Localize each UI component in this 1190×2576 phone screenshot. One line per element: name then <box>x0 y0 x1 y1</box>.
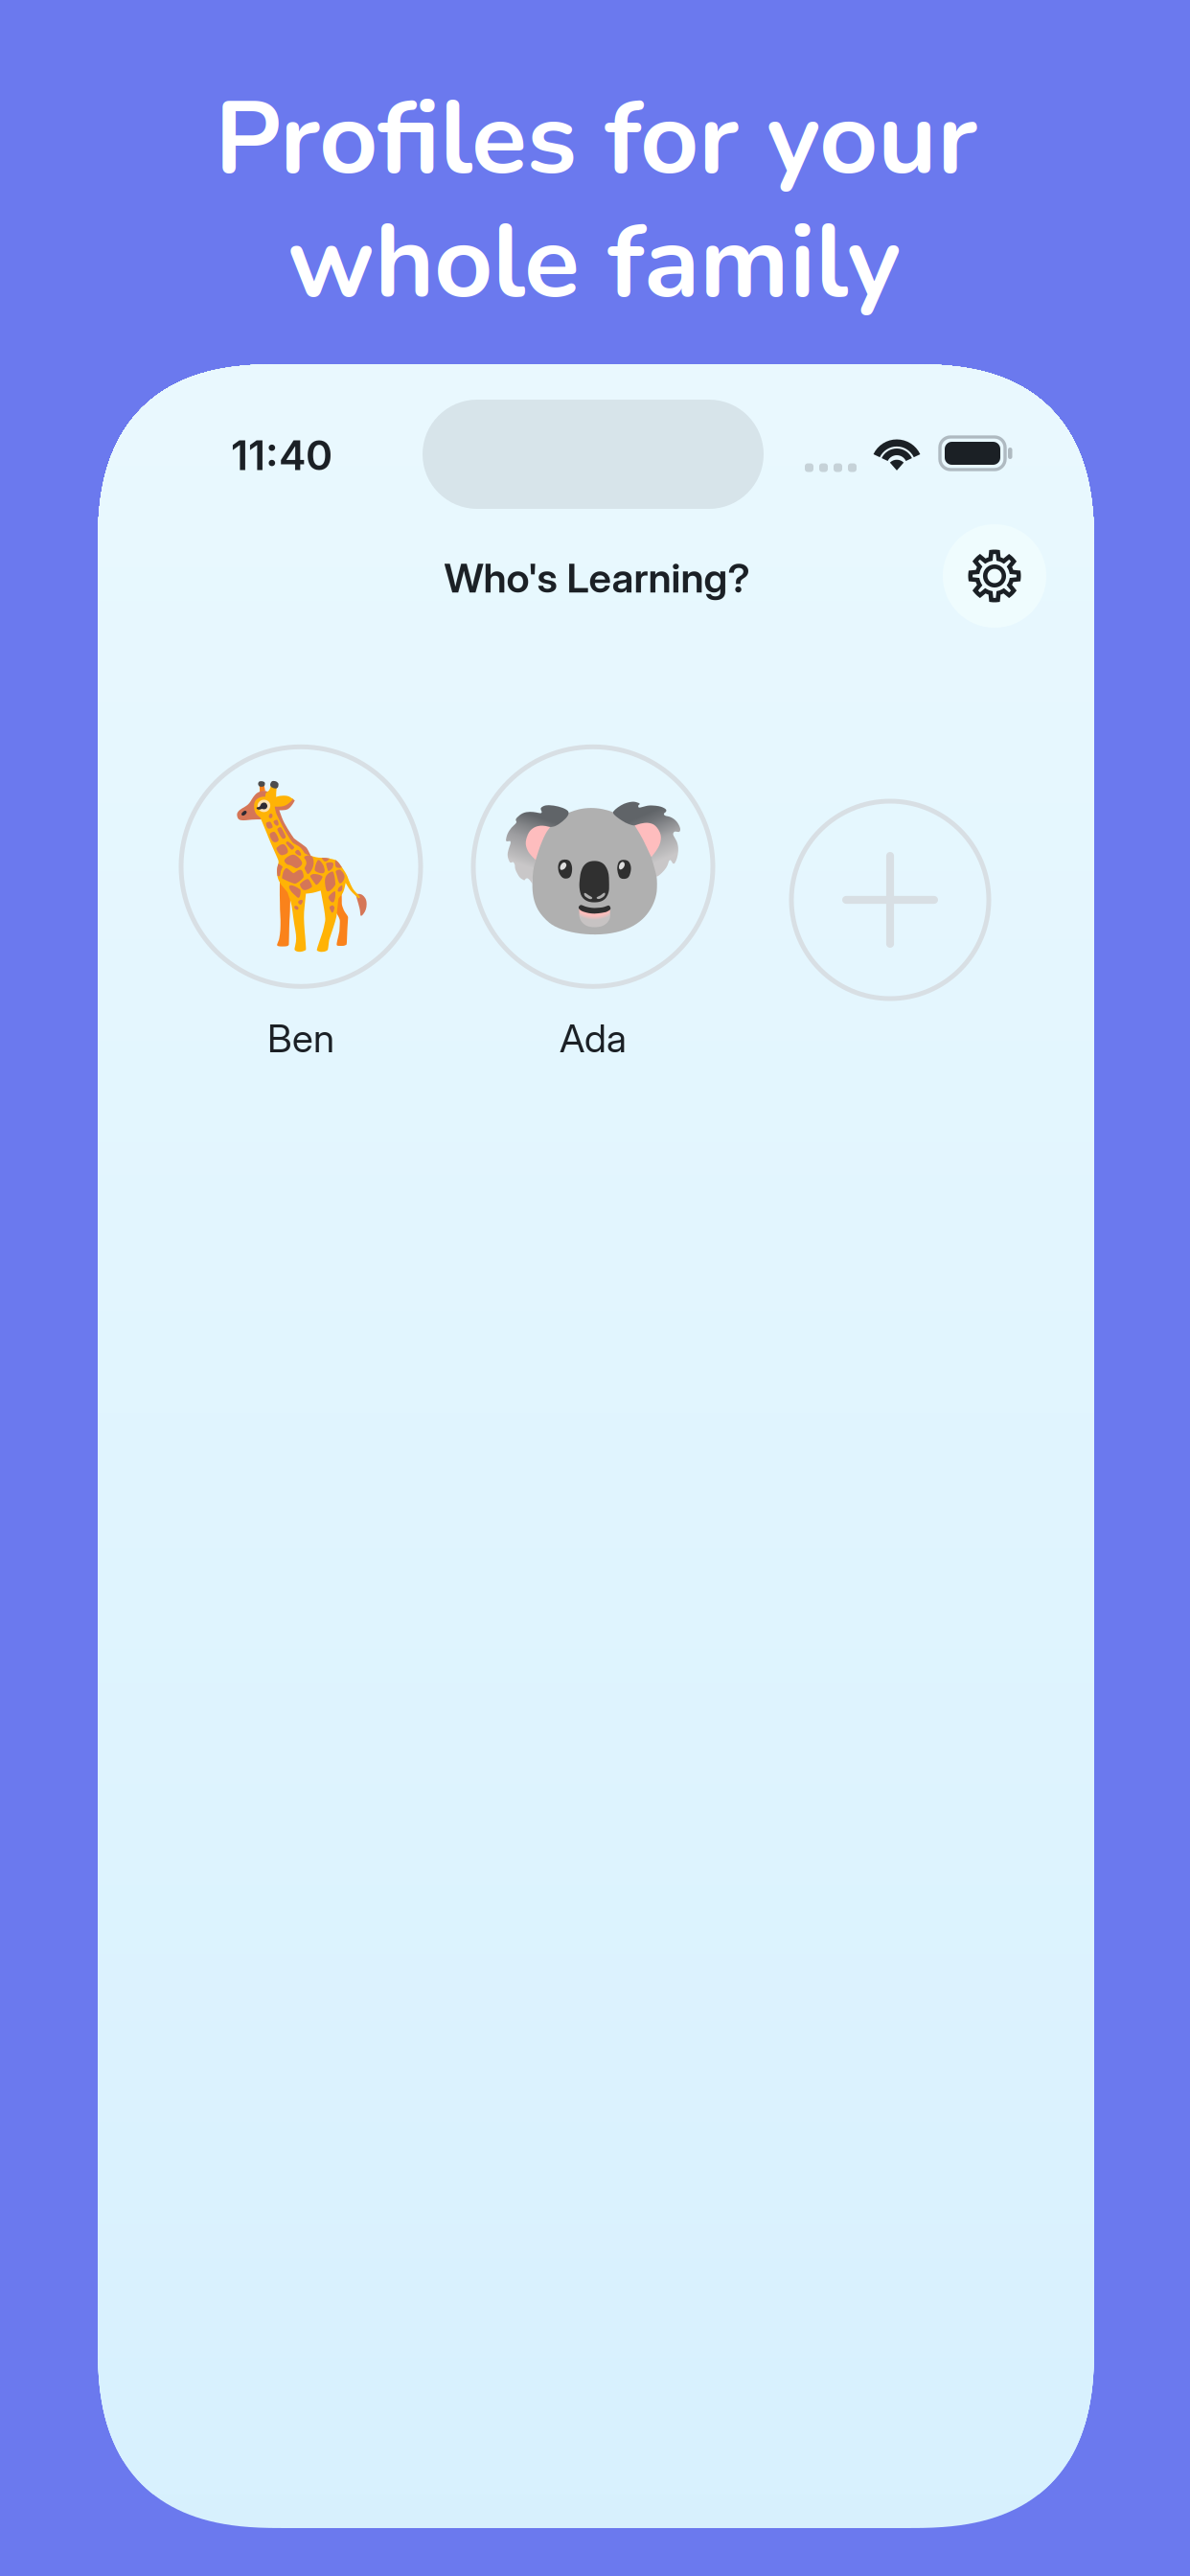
button[interactable]: 🦒 <box>167 744 435 1062</box>
button[interactable]: Settings <box>943 524 1046 628</box>
staticText: Profiles for your <box>215 69 977 209</box>
staticText: 🐨 <box>496 775 690 958</box>
button[interactable]: Add profile <box>789 798 992 1001</box>
staticText: Ada <box>560 1015 627 1062</box>
staticText: 🦒 <box>204 775 398 958</box>
staticText: Who's Learning? <box>444 553 750 602</box>
staticText: 11:40 <box>231 430 332 480</box>
button[interactable]: 🐨 <box>459 744 727 1062</box>
staticText: whole family <box>287 193 901 332</box>
staticText: Ben <box>267 1015 334 1062</box>
